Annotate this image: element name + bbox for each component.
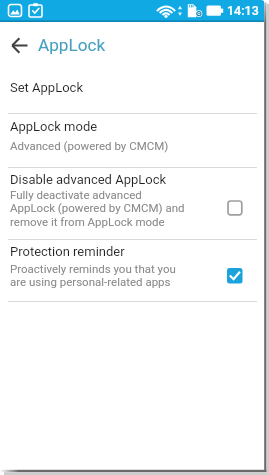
staticText: Disable advanced AppLock: [10, 172, 167, 187]
staticText: 14:13: [227, 3, 259, 18]
staticText: Proactively reminds you that you are usi…: [10, 262, 176, 288]
staticText: Fully deactivate advanced AppLock (power…: [10, 188, 185, 228]
button[interactable]: Set AppLock: [0, 62, 264, 113]
staticText: Advanced (powered by CMCM): [10, 139, 169, 152]
button[interactable]: AppLock mode: [0, 114, 264, 167]
staticText: Protection reminder: [10, 244, 125, 259]
button[interactable]: Protection reminder: [0, 240, 264, 301]
staticText: AppLock mode: [10, 119, 98, 134]
button[interactable]: [227, 200, 243, 216]
button[interactable]: [227, 268, 243, 284]
button[interactable]: [0, 22, 40, 62]
staticText: AppLock: [38, 35, 106, 55]
button[interactable]: Disable advanced AppLock: [0, 168, 264, 239]
staticText: Set AppLock: [10, 80, 83, 95]
